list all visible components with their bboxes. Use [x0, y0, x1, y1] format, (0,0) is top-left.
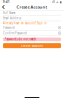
staticText: Full Name: [3, 11, 16, 15]
staticText: Create Account: [21, 44, 43, 47]
staticText: Password: [3, 26, 15, 29]
staticText: Passwords do not match: [4, 37, 36, 41]
staticText: ıll ᗑ ▮: [52, 0, 61, 4]
staticText: 9:41: [3, 0, 10, 4]
staticText: Create Account: [16, 4, 47, 10]
button[interactable]: Already have an account? Sign in: [3, 21, 47, 25]
button[interactable]: Back: [0, 4, 7, 9]
button[interactable]: Create Account: [3, 43, 61, 48]
staticText: Confirm Password: [3, 31, 27, 35]
staticText: Email Address: [3, 16, 21, 20]
staticText: Already have an account? Sign in: [3, 21, 47, 25]
